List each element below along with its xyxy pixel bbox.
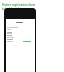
button[interactable]: Flutter registration form tutorial guide xyxy=(2,3,37,11)
staticText: Flutter registration form tutorial guide xyxy=(2,3,37,11)
